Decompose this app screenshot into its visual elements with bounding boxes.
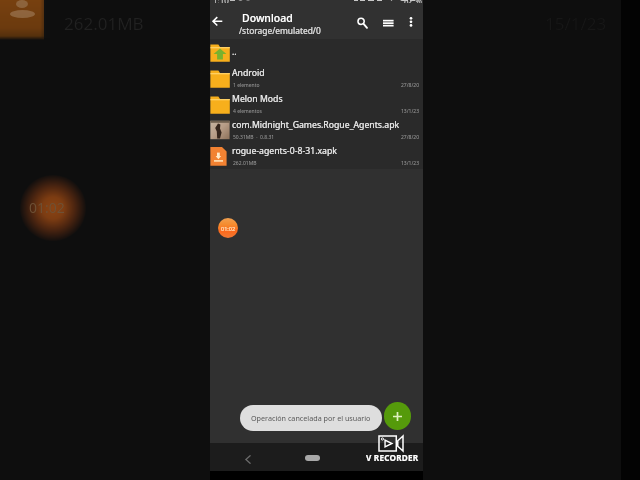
staticText: Download bbox=[242, 11, 293, 25]
staticText: /storage/emulated/0 bbox=[239, 25, 321, 36]
staticText: V RECORDER bbox=[366, 452, 419, 463]
staticText: 82 % bbox=[404, 0, 422, 3]
button[interactable]: .. bbox=[210, 39, 423, 65]
staticText: 27/8/20 bbox=[401, 134, 420, 141]
button[interactable]: rogue-agents-0-8-31.xapk bbox=[210, 143, 423, 169]
staticText: 13/1/23 bbox=[401, 160, 420, 167]
staticText: rogue-agents-0-8-31.xapk bbox=[232, 145, 337, 157]
staticText: Melon Mods bbox=[232, 93, 283, 105]
staticText: 262.01MB bbox=[233, 160, 257, 167]
staticText: Operación cancelada por el usuario bbox=[251, 413, 371, 423]
staticText: 50.31MB · 0.8.31 bbox=[233, 134, 275, 141]
button[interactable]: Melon Mods bbox=[210, 91, 423, 117]
staticText: 1:10 bbox=[213, 0, 229, 3]
staticText: 13/1/23 bbox=[401, 108, 420, 115]
staticText: 4 elementos bbox=[233, 108, 262, 115]
staticText: 1 elemento bbox=[233, 82, 260, 89]
button[interactable]: View mode bbox=[381, 17, 393, 26]
button[interactable]: Back bbox=[238, 449, 258, 469]
staticText: Android bbox=[232, 67, 265, 79]
button[interactable]: com.Midnight_Games.Rogue_Agents.apk bbox=[210, 117, 423, 143]
button[interactable]: Home bbox=[305, 455, 320, 461]
staticText: .. bbox=[232, 46, 237, 58]
button[interactable]: Operación cancelada por el usuario bbox=[240, 405, 382, 431]
button[interactable]: Search bbox=[351, 10, 371, 30]
staticText: 01:02 bbox=[29, 198, 65, 217]
button[interactable]: Add bbox=[384, 402, 411, 430]
staticText: 27/8/20 bbox=[401, 82, 420, 89]
button[interactable]: More options bbox=[402, 17, 420, 31]
staticText: 01:02 bbox=[221, 225, 236, 232]
staticText: com.Midnight_Games.Rogue_Agents.apk bbox=[232, 119, 400, 131]
staticText: 262.01MB bbox=[64, 12, 144, 35]
button[interactable]: Android bbox=[210, 65, 423, 91]
button[interactable]: Back bbox=[210, 11, 232, 36]
